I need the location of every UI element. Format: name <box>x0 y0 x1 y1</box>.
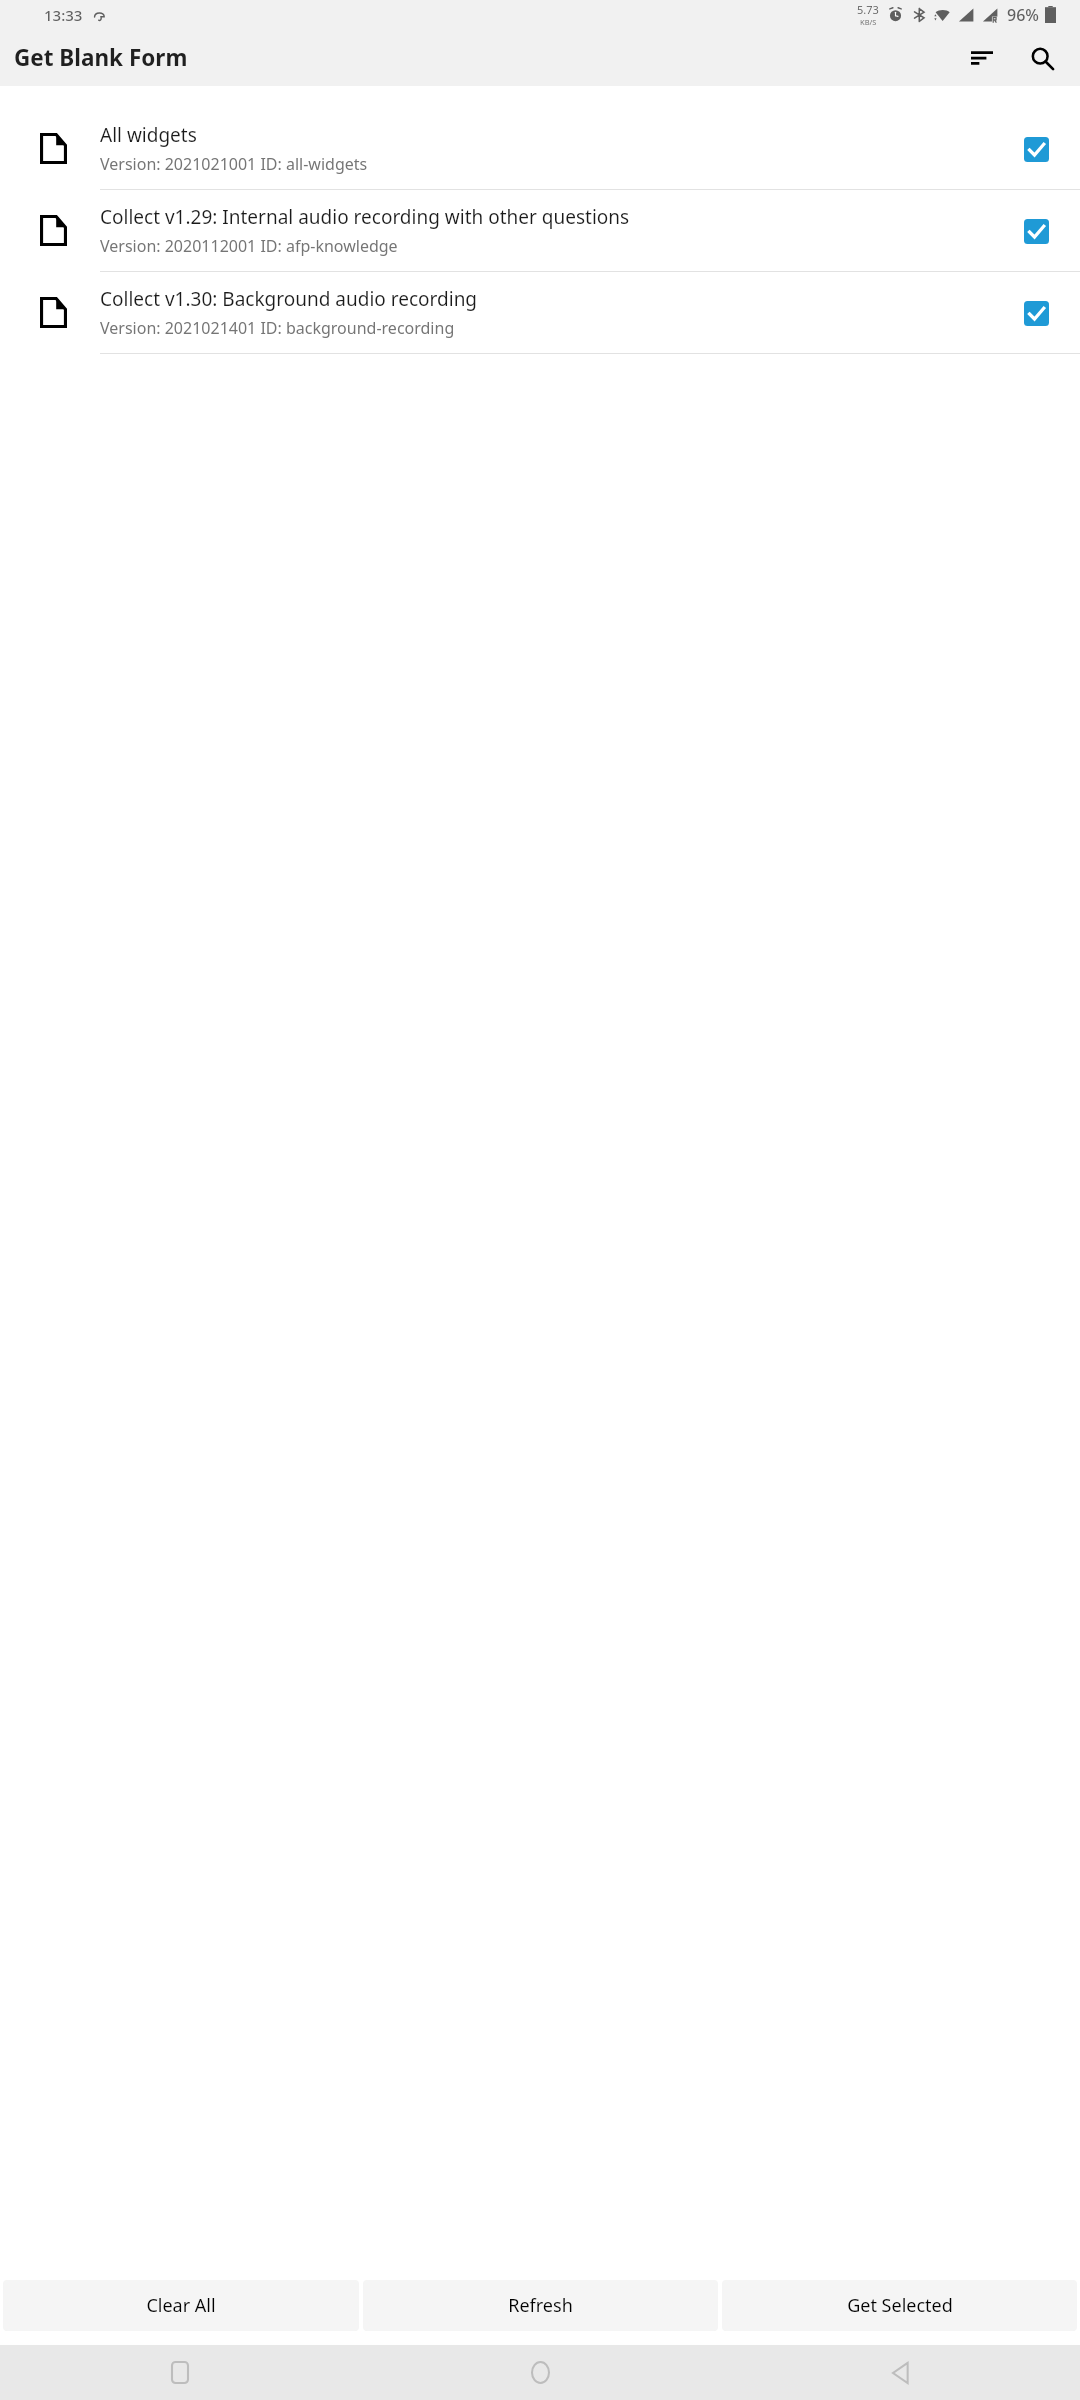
staticText: Version: 2021021001 ID: all-widgets <box>100 153 368 175</box>
button[interactable]: Recents <box>0 2345 360 2400</box>
staticText: Collect v1.30: Background audio recordin… <box>100 286 478 312</box>
button[interactable]: Sort <box>958 34 1006 82</box>
staticText: Get Blank Form <box>14 42 188 73</box>
staticText: Collect v1.29: Internal audio recording … <box>100 204 630 230</box>
button[interactable]: Collect v1.30: Background audio recordin… <box>0 272 1080 353</box>
staticText: KB/S <box>860 17 877 27</box>
staticText: Version: 2020112001 ID: afp-knowledge <box>100 235 398 257</box>
staticText: Version: 2021021401 ID: background-recor… <box>100 317 455 339</box>
button[interactable]: Selected <box>1018 295 1054 331</box>
button[interactable]: Search <box>1018 34 1066 82</box>
staticText: Clear All <box>146 2293 216 2318</box>
button[interactable]: Collect v1.29: Internal audio recording … <box>0 190 1080 271</box>
staticText: Get Selected <box>847 2293 953 2318</box>
staticText: 96% <box>1007 4 1039 26</box>
button[interactable]: Get Selected <box>722 2280 1077 2331</box>
button[interactable]: Home <box>360 2345 720 2400</box>
staticText: 5.73 <box>857 2 879 17</box>
button[interactable]: All widgets <box>0 108 1080 189</box>
button[interactable]: Refresh <box>363 2280 718 2331</box>
button[interactable]: Selected <box>1018 213 1054 249</box>
staticText: 13:33 <box>44 5 83 25</box>
button[interactable]: Selected <box>1018 131 1054 167</box>
staticText: All widgets <box>100 122 197 148</box>
staticText: Refresh <box>508 2293 573 2318</box>
button[interactable]: Clear All <box>3 2280 359 2331</box>
